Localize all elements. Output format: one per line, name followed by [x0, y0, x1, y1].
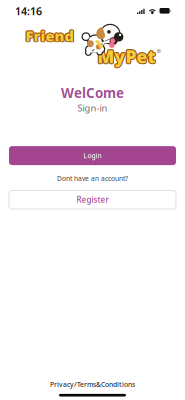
staticText: MyPet — [97, 46, 155, 69]
staticText: MyPet — [97, 45, 155, 68]
staticText: MyPet — [97, 44, 155, 67]
staticText: Friend — [26, 27, 74, 46]
staticText: ® — [156, 48, 160, 55]
staticText: MyPet — [97, 44, 155, 67]
staticText: WelCome — [61, 84, 124, 102]
staticText: MyPet — [98, 44, 156, 67]
staticText: Friend — [25, 25, 73, 45]
staticText: Privacy/Terms&Conditions — [50, 380, 135, 389]
staticText: Sign-in — [77, 102, 107, 114]
staticText: Friend — [25, 27, 73, 46]
staticText: Login — [83, 151, 101, 160]
button[interactable]: Privacy/Terms&Conditions — [50, 380, 135, 389]
staticText: Dont have an account? — [57, 174, 128, 183]
staticText: Friend — [26, 25, 74, 45]
staticText: Friend — [26, 26, 74, 45]
staticText: Register — [76, 194, 108, 205]
staticText: MyPet — [97, 45, 155, 68]
staticText: Friend — [25, 26, 73, 45]
staticText: Friend — [25, 26, 73, 45]
button[interactable]: Register — [9, 190, 176, 209]
staticText: MyPet — [97, 46, 155, 69]
staticText: 14:16 — [15, 4, 42, 18]
staticText: Friend — [25, 25, 73, 45]
staticText: MyPet — [98, 46, 156, 69]
button[interactable]: Login — [9, 146, 176, 165]
staticText: Friend — [25, 27, 73, 46]
staticText: MyPet — [98, 45, 156, 68]
